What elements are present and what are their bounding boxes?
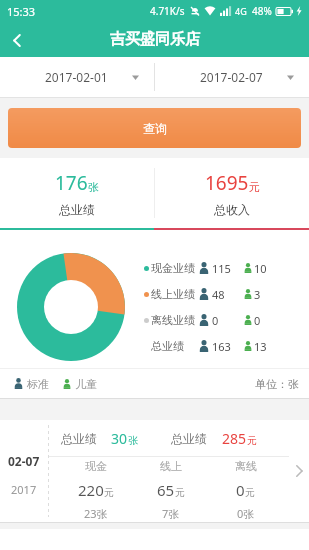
staticText: 115 bbox=[212, 261, 231, 276]
staticText: 线上 bbox=[160, 459, 182, 473]
staticText: 元 bbox=[249, 180, 260, 194]
staticText: 285 bbox=[222, 429, 247, 448]
staticText: 0 bbox=[212, 313, 219, 328]
staticText: 0 bbox=[236, 480, 245, 500]
button[interactable]: 02-07 bbox=[0, 420, 309, 522]
staticText: 3 bbox=[254, 287, 261, 302]
staticText: 张 bbox=[128, 434, 138, 447]
staticText: 元 bbox=[247, 434, 257, 447]
staticText: 13 bbox=[254, 339, 267, 354]
staticText: 总业绩 bbox=[151, 339, 184, 353]
button[interactable]: 查询 bbox=[8, 108, 301, 148]
staticText: 离线业绩 bbox=[151, 313, 195, 327]
button[interactable]: 2017-02-01 bbox=[0, 57, 154, 97]
staticText: 2017 bbox=[11, 482, 37, 497]
staticText: 10 bbox=[254, 261, 267, 276]
staticText: 单位：张 bbox=[255, 377, 299, 391]
staticText: 元 bbox=[175, 486, 185, 499]
staticText: 总收入 bbox=[214, 202, 250, 217]
staticText: 2017-02-01 bbox=[45, 69, 108, 85]
staticText: 儿童 bbox=[75, 377, 97, 391]
staticText: 176 bbox=[55, 170, 88, 196]
staticText: 张 bbox=[88, 180, 99, 194]
staticText: 4G bbox=[235, 5, 247, 17]
staticText: 元 bbox=[245, 486, 255, 499]
staticText: 标准 bbox=[27, 377, 49, 391]
staticText: 元 bbox=[104, 486, 114, 499]
staticText: 48% bbox=[252, 4, 272, 18]
staticText: 现金业绩 bbox=[151, 261, 195, 275]
staticText: 48 bbox=[212, 287, 225, 302]
staticText: 总业绩 bbox=[59, 202, 95, 217]
staticText: 02-07 bbox=[8, 453, 40, 469]
button[interactable]: 1695 bbox=[155, 158, 309, 228]
staticText: 220 bbox=[78, 480, 104, 500]
staticText: 65 bbox=[157, 480, 175, 500]
staticText: 吉买盛同乐店 bbox=[110, 30, 200, 49]
staticText: 23张 bbox=[84, 506, 108, 521]
staticText: 查询 bbox=[143, 121, 167, 136]
staticText: 163 bbox=[212, 339, 231, 354]
staticText: 2017-02-07 bbox=[200, 69, 263, 85]
staticText: 1695 bbox=[205, 170, 249, 196]
button[interactable] bbox=[289, 420, 309, 522]
staticText: 总业绩 bbox=[61, 431, 97, 446]
staticText: 7张 bbox=[162, 506, 180, 521]
staticText: 4.71K/s bbox=[150, 4, 185, 18]
staticText: 0 bbox=[254, 313, 261, 328]
button[interactable] bbox=[0, 23, 34, 57]
staticText: 离线 bbox=[235, 459, 257, 473]
button[interactable]: 2017-02-07 bbox=[155, 57, 309, 97]
staticText: 0张 bbox=[237, 506, 255, 521]
staticText: 15:33 bbox=[7, 4, 36, 19]
staticText: 线上业绩 bbox=[151, 287, 195, 301]
staticText: 总业绩 bbox=[171, 431, 207, 446]
staticText: 现金 bbox=[85, 459, 107, 473]
staticText: 30 bbox=[111, 429, 128, 448]
button[interactable]: 176 bbox=[0, 158, 154, 228]
